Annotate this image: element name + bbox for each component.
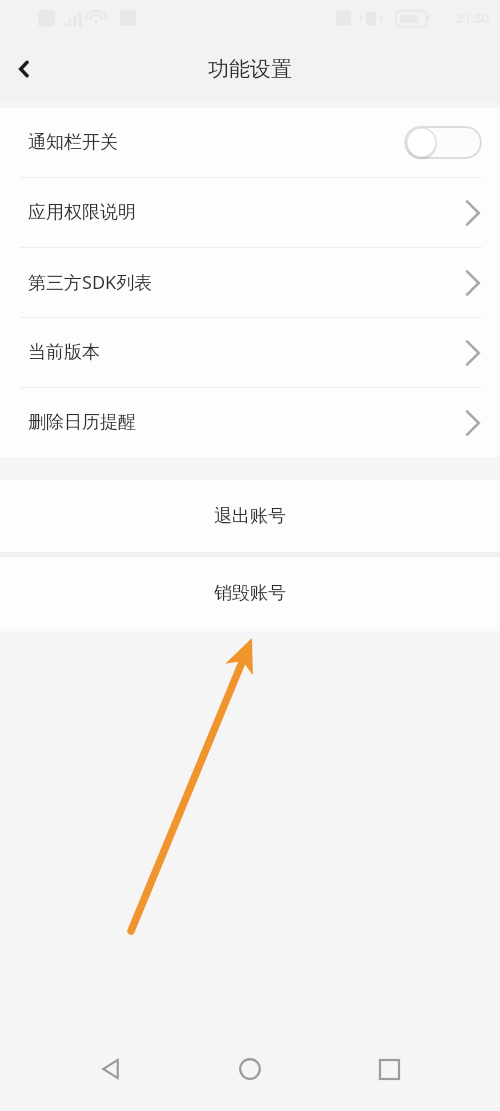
staticText: 21:50 [456, 9, 490, 27]
staticText: 删除日历提醒 [28, 411, 136, 434]
staticText: 销毁账号 [214, 582, 286, 605]
button[interactable]: 退出账号 [0, 480, 500, 552]
button[interactable]: 删除日历提醒 [0, 388, 500, 457]
button[interactable]: Home [222, 1041, 278, 1097]
staticText: 功能设置 [208, 56, 292, 82]
button[interactable]: 应用权限说明 [0, 178, 500, 247]
button[interactable]: 当前版本 [0, 318, 500, 387]
staticText: 通知栏开关 [28, 131, 118, 154]
button[interactable]: Back [83, 1041, 139, 1097]
button[interactable]: Back [0, 45, 48, 93]
staticText: 当前版本 [28, 341, 100, 364]
button[interactable]: 通知栏开关 [0, 108, 500, 177]
button[interactable]: Recent apps [361, 1041, 417, 1097]
staticText: 应用权限说明 [28, 201, 136, 224]
button[interactable]: 销毁账号 [0, 557, 500, 629]
button[interactable]: Notification bar switch [404, 126, 482, 159]
staticText: 退出账号 [214, 505, 286, 528]
staticText: 第三方SDK列表 [28, 270, 153, 295]
button[interactable]: 第三方SDK列表 [0, 248, 500, 317]
